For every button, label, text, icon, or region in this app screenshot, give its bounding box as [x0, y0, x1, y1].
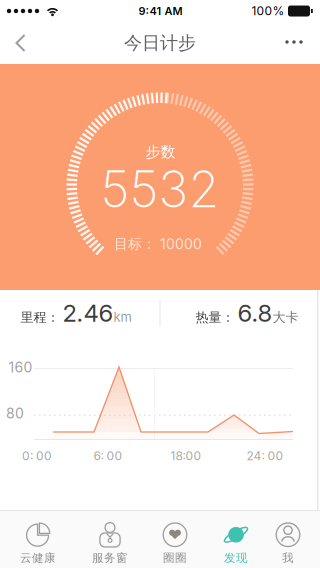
staticText: 我	[282, 551, 294, 565]
staticText: 热量：	[195, 309, 234, 326]
staticText: 160	[8, 359, 32, 376]
staticText: 2.46	[62, 298, 113, 327]
button[interactable]: 服务窗	[79, 518, 141, 568]
staticText: 今日计步	[124, 32, 196, 54]
staticText: 5532	[100, 159, 219, 219]
staticText: 步数	[145, 143, 175, 161]
button[interactable]: 圈圈	[144, 518, 206, 568]
staticText: 里程：	[20, 309, 59, 326]
staticText: 0: 00	[22, 449, 52, 463]
button[interactable]: 云健康	[7, 518, 69, 568]
staticText: 9:41 AM	[138, 4, 182, 18]
button[interactable]: 我	[257, 518, 319, 568]
staticText: km	[113, 309, 131, 325]
staticText: 100%	[251, 4, 284, 18]
staticText: 大卡	[272, 309, 298, 326]
staticText: 服务窗	[92, 551, 128, 565]
staticText: 24: 00	[246, 449, 283, 463]
button[interactable]: Back	[0, 20, 44, 64]
staticText: 80	[6, 405, 24, 422]
button[interactable]: 发现	[205, 518, 267, 568]
staticText: 发现	[224, 551, 248, 565]
staticText: 目标： 10000	[114, 235, 202, 253]
staticText: 云健康	[20, 551, 56, 565]
button[interactable]: More	[276, 20, 312, 64]
staticText: 18:00	[170, 449, 201, 463]
staticText: 6.8	[237, 298, 272, 327]
staticText: 6: 00	[93, 449, 122, 463]
staticText: 圈圈	[163, 551, 187, 565]
